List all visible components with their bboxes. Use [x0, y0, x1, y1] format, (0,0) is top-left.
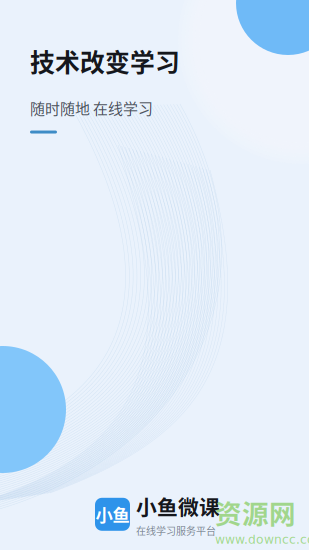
staticText: 小鱼微课	[136, 491, 220, 521]
staticText: 随时随地 在线学习	[30, 97, 153, 118]
staticText: 小鱼	[95, 502, 129, 527]
staticText: www.downcc.com	[215, 532, 309, 547]
staticText: 技术改变学习	[30, 43, 180, 79]
staticText: 资源网	[215, 493, 296, 531]
staticText: 在线学习服务平台	[136, 523, 216, 538]
